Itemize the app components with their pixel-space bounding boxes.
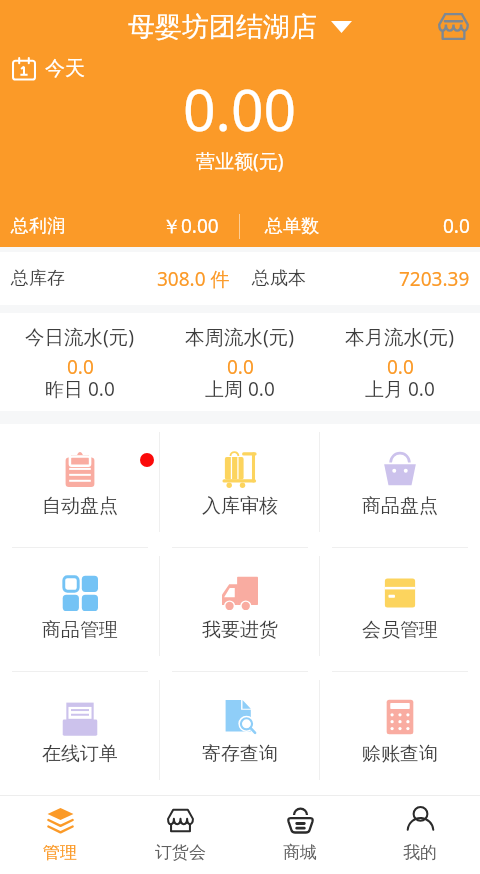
staticText: 0.0 <box>227 354 254 380</box>
button[interactable]: 我要进货 <box>160 548 320 672</box>
staticText: 本周流水(元) <box>185 323 295 350</box>
button[interactable]: 本周流水(元) <box>160 313 320 411</box>
button[interactable]: 管理 <box>0 796 120 874</box>
staticText: 赊账查询 <box>362 742 438 766</box>
staticText: 0.0 <box>387 354 414 380</box>
staticText: 总库存 <box>11 267 65 290</box>
staticText: 在线订单 <box>42 742 118 766</box>
staticText: 本月流水(元) <box>345 323 455 350</box>
button[interactable]: 自动盘点 <box>0 424 160 548</box>
button[interactable]: 寄存查询 <box>160 672 320 795</box>
button[interactable]: 本月流水(元) <box>320 313 480 411</box>
staticText: ￥0.00 <box>162 213 219 239</box>
staticText: 昨日 0.0 <box>45 376 115 402</box>
staticText: 寄存查询 <box>202 742 278 766</box>
staticText: 商城 <box>283 842 317 863</box>
button[interactable]: 今天 <box>12 56 85 81</box>
staticText: 营业额(元) <box>196 148 284 174</box>
staticText: 今天 <box>45 56 85 81</box>
staticText: 总利润 <box>11 215 65 238</box>
button[interactable]: 我的 <box>360 796 480 874</box>
staticText: 订货会 <box>155 842 206 863</box>
staticText: 入库审核 <box>202 494 278 518</box>
staticText: 7203.39 <box>399 266 470 292</box>
button[interactable]: 商城 <box>240 796 360 874</box>
staticText: 308.0 件 <box>157 266 230 292</box>
button[interactable]: 商品盘点 <box>320 424 480 548</box>
staticText: 母婴坊团结湖店 <box>128 10 317 44</box>
button[interactable]: 入库审核 <box>160 424 320 548</box>
button[interactable]: 总利润 <box>0 205 239 247</box>
button[interactable]: 赊账查询 <box>320 672 480 795</box>
staticText: 总单数 <box>265 215 319 238</box>
button[interactable]: 商品管理 <box>0 548 160 672</box>
button[interactable]: 总成本 <box>240 252 480 305</box>
staticText: 上周 0.0 <box>205 376 275 402</box>
staticText: 今日流水(元) <box>25 323 135 350</box>
staticText: 管理 <box>43 842 77 863</box>
button[interactable]: 总单数 <box>240 205 480 247</box>
button[interactable]: 母婴坊团结湖店 <box>128 10 352 44</box>
staticText: 我的 <box>403 842 437 863</box>
staticText: 0.0 <box>67 354 94 380</box>
button[interactable]: Store <box>427 0 480 53</box>
button[interactable]: 订货会 <box>120 796 240 874</box>
staticText: 0.0 <box>443 213 470 239</box>
staticText: 我要进货 <box>202 618 278 642</box>
staticText: 商品管理 <box>42 618 118 642</box>
button[interactable]: 今日流水(元) <box>0 313 160 411</box>
button[interactable]: 总库存 <box>0 252 240 305</box>
staticText: 总成本 <box>252 267 306 290</box>
staticText: 会员管理 <box>362 618 438 642</box>
staticText: 上月 0.0 <box>365 376 435 402</box>
button[interactable]: 会员管理 <box>320 548 480 672</box>
button[interactable]: 在线订单 <box>0 672 160 795</box>
staticText: 商品盘点 <box>362 494 438 518</box>
staticText: 自动盘点 <box>42 494 118 518</box>
staticText: 0.00 <box>183 70 297 148</box>
